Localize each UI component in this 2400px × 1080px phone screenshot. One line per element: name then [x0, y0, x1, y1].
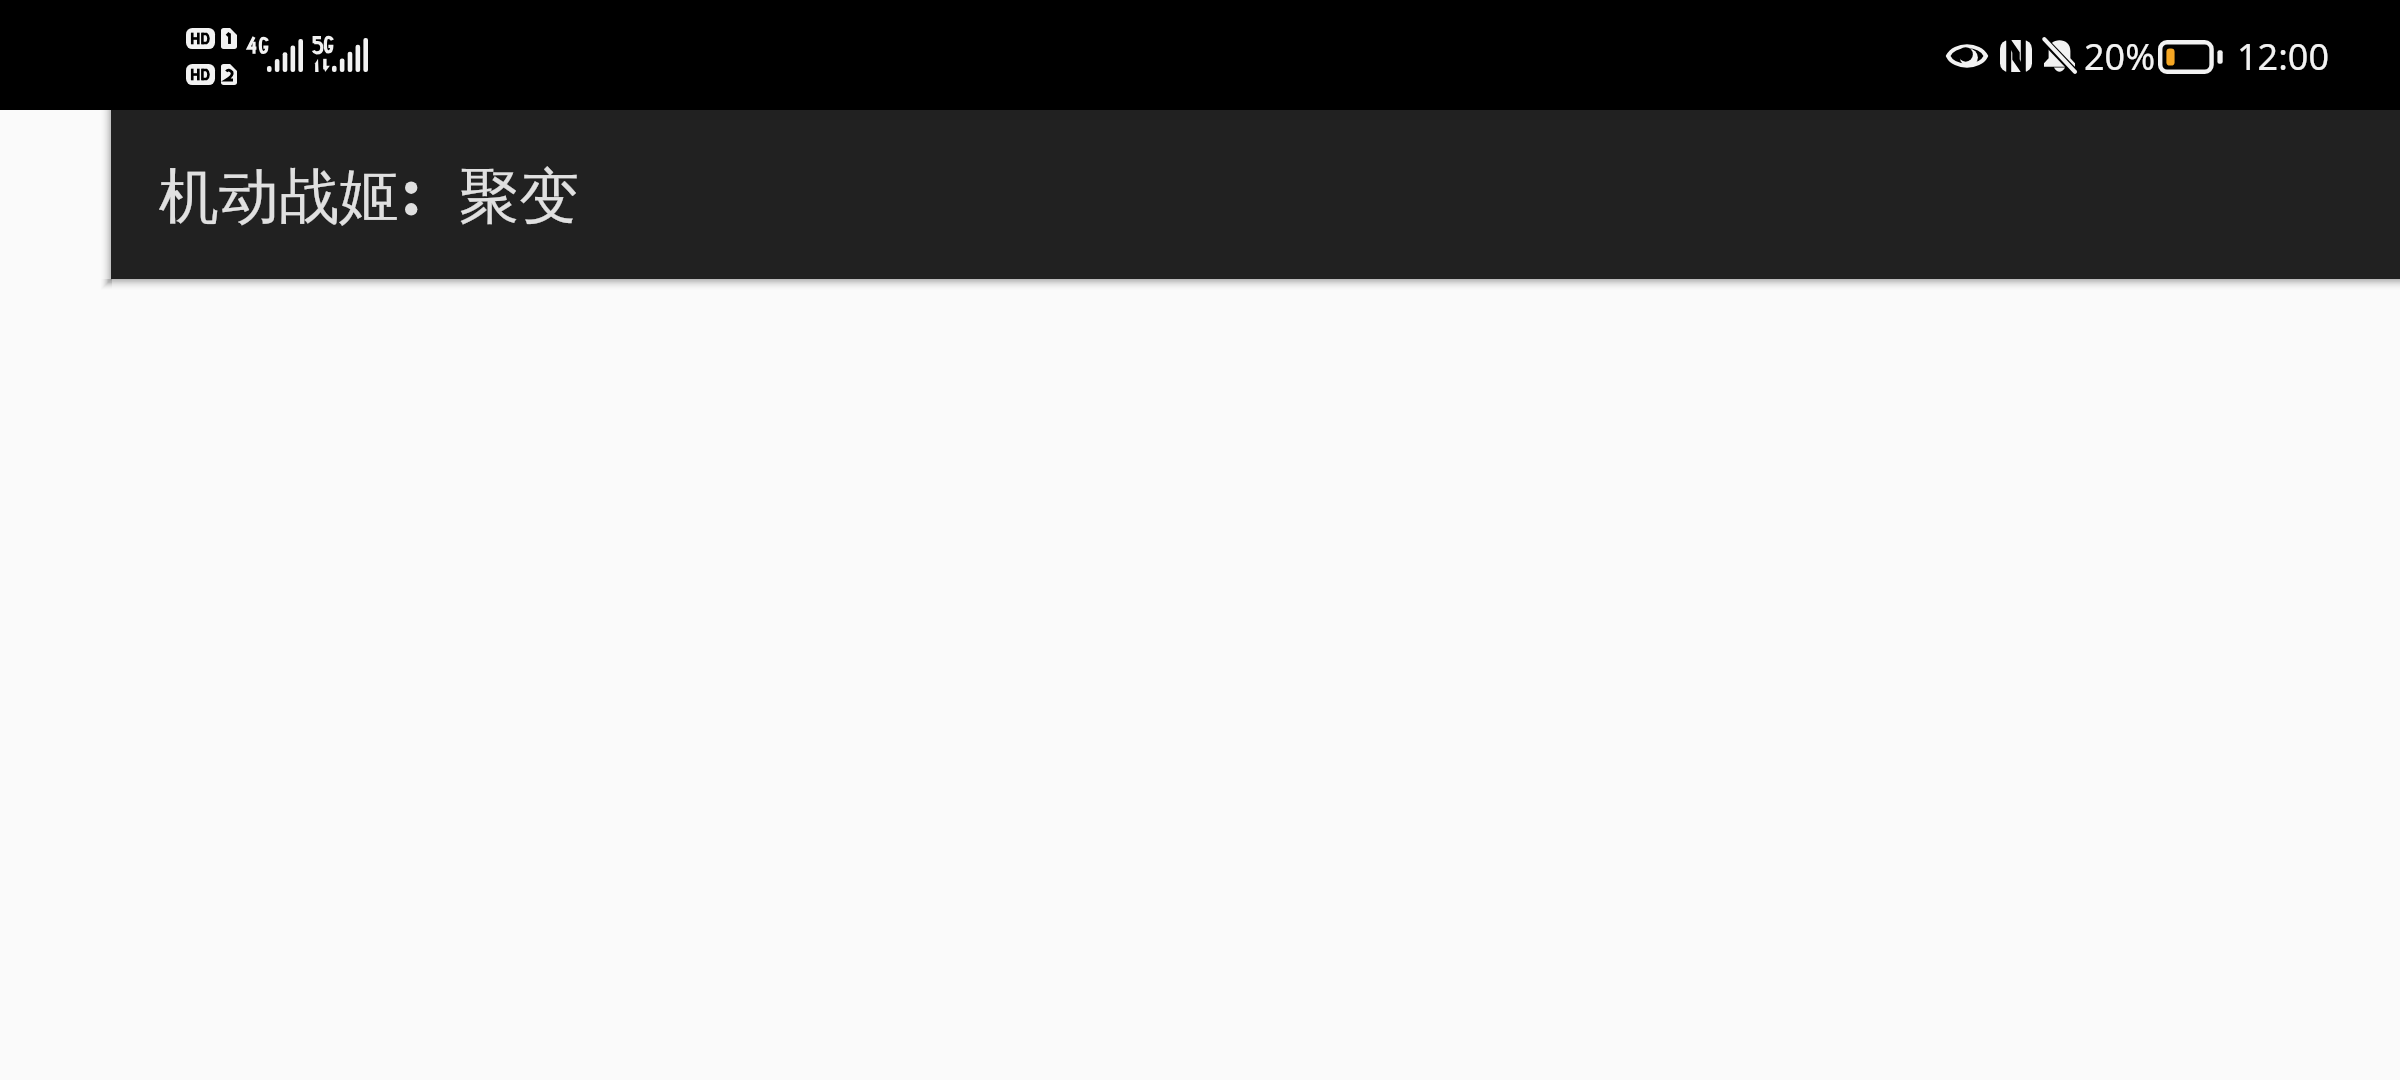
- other: NFC on: [2000, 40, 2032, 72]
- staticText: 20%: [2084, 32, 2156, 81]
- staticText: 聚变: [459, 159, 579, 235]
- staticText: 机动战姬: [159, 159, 399, 235]
- other: SIM 1 4G signal: [248, 37, 303, 72]
- other: SIM 2 5G signal: [313, 36, 368, 72]
- other: Ringer silent: [2043, 38, 2076, 74]
- other: Dual SIM VoLTE HD: [186, 28, 237, 85]
- other: Battery 20 percent: [2158, 40, 2224, 74]
- staticText: 12:00: [2237, 32, 2330, 81]
- button[interactable]: 机动战姬: [111, 110, 447, 279]
- other: Eye comfort mode on: [1946, 41, 1988, 71]
